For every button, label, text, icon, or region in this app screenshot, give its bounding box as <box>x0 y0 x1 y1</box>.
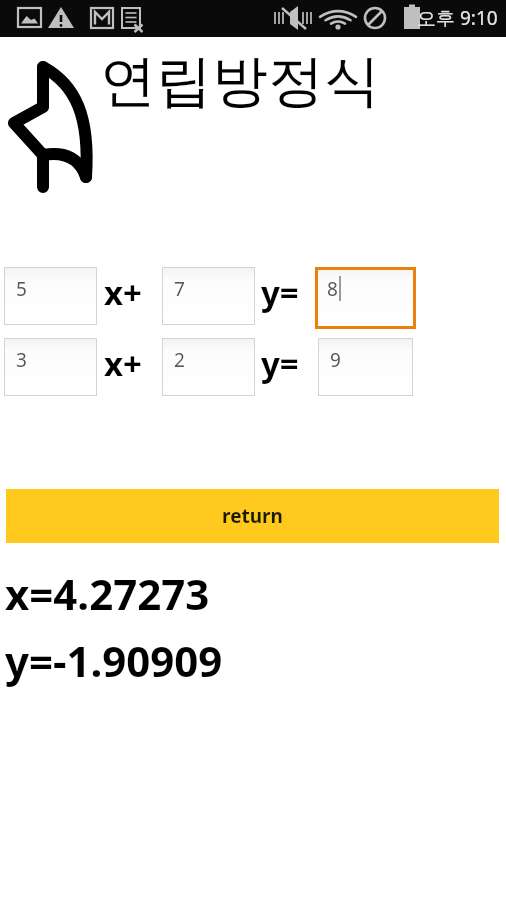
button[interactable]: return <box>6 489 499 543</box>
staticText: 8 <box>327 276 338 302</box>
button[interactable]: 7 <box>162 267 255 325</box>
staticText: x+ <box>104 270 142 315</box>
button[interactable]: 8 <box>315 267 416 329</box>
staticText: 5 <box>16 276 27 302</box>
staticText: return <box>222 503 283 529</box>
staticText: 연립방정식 <box>100 46 380 117</box>
staticText: y= <box>261 341 299 386</box>
staticText: 오후 9:10 <box>417 5 498 31</box>
staticText: 9 <box>330 347 341 373</box>
button[interactable]: 2 <box>162 338 255 396</box>
button[interactable]: 3 <box>4 338 97 396</box>
button[interactable]: 5 <box>4 267 97 325</box>
button[interactable]: 9 <box>318 338 413 396</box>
staticText: 3 <box>16 347 27 373</box>
staticText: x=4.27273 <box>5 565 210 622</box>
button[interactable]: Back <box>4 55 100 195</box>
staticText: 2 <box>174 347 185 373</box>
staticText: y= <box>261 270 299 315</box>
staticText: 7 <box>174 276 185 302</box>
staticText: y=-1.90909 <box>5 632 223 689</box>
staticText: x+ <box>104 341 142 386</box>
